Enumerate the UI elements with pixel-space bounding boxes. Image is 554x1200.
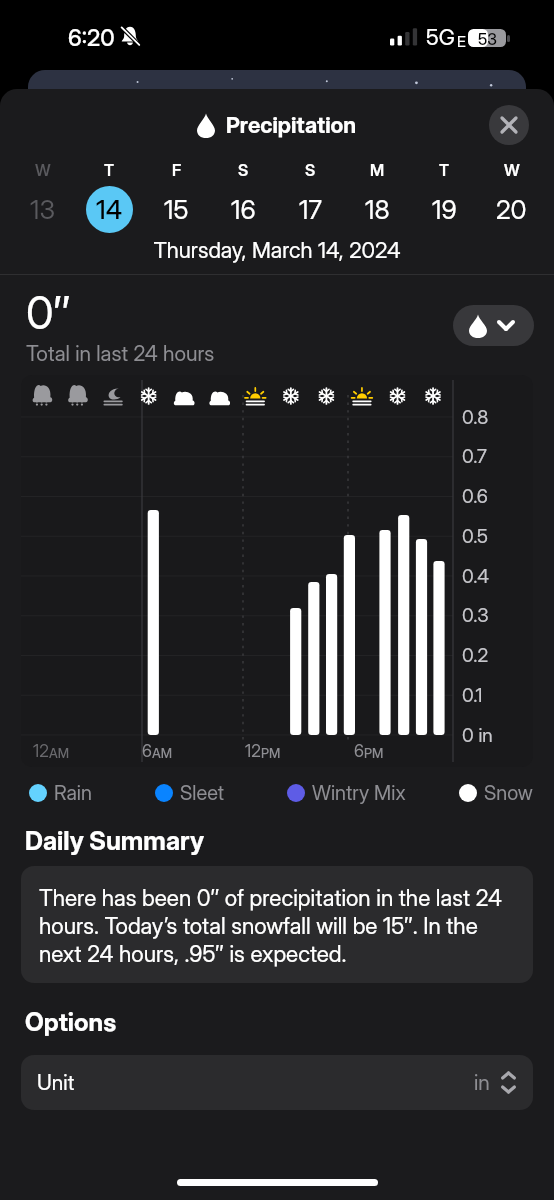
staticText: 6:20 [68, 24, 115, 52]
staticText: 0.8 [462, 406, 489, 429]
staticText: 0.6 [462, 485, 488, 508]
staticText: PM [261, 745, 281, 761]
staticText: Total in last 24 hours [26, 341, 215, 366]
staticText: Unit [37, 1070, 474, 1095]
button[interactable]: W [478, 160, 545, 233]
button[interactable]: Unit [21, 1055, 533, 1110]
staticText: 16 [231, 194, 256, 225]
button[interactable]: S [277, 160, 344, 233]
staticText: 0.3 [462, 604, 489, 627]
staticText: 0.2 [462, 644, 489, 667]
staticText: 0.7 [462, 445, 487, 468]
button[interactable]: W [9, 160, 76, 233]
button[interactable]: F [143, 160, 210, 233]
staticText: 18 [365, 194, 390, 225]
button[interactable]: Snow [459, 781, 533, 805]
staticText: 6 [142, 741, 152, 762]
staticText: 15 [164, 194, 189, 225]
staticText: W [504, 160, 520, 179]
staticText: AM [49, 745, 70, 761]
button[interactable]: Wintry Mix [287, 781, 406, 805]
button[interactable]: Close [489, 105, 529, 145]
staticText: 20 [496, 194, 527, 225]
staticText: 0 in [462, 724, 493, 747]
staticText: 13 [30, 194, 55, 225]
staticText: 6 [354, 741, 364, 762]
button[interactable]: M [344, 160, 411, 233]
button[interactable]: T [76, 160, 143, 233]
staticText: 5G [426, 24, 455, 51]
staticText: AM [152, 745, 173, 761]
staticText: M [370, 160, 385, 179]
staticText: Rain [54, 781, 92, 805]
staticText: Daily Summary [25, 825, 204, 856]
staticText: E [457, 32, 466, 50]
staticText: Thursday, March 14, 2024 [0, 237, 554, 264]
staticText: in [474, 1070, 490, 1095]
staticText: 12 [33, 741, 49, 762]
staticText: T [104, 160, 115, 179]
staticText: Wintry Mix [312, 781, 406, 805]
staticText: 53 [478, 29, 498, 47]
button[interactable]: Precipitation type menu [453, 305, 534, 346]
staticText: 19 [432, 194, 457, 225]
staticText: There has been 0″ of precipitation in th… [39, 884, 517, 967]
staticText: 0″ [26, 285, 71, 339]
staticText: W [35, 160, 51, 179]
staticText: Precipitation [226, 112, 357, 139]
staticText: S [238, 160, 249, 179]
staticText: Options [25, 1007, 117, 1037]
staticText: 17 [299, 194, 322, 225]
staticText: T [439, 160, 450, 179]
staticText: Snow [484, 781, 533, 805]
button[interactable]: Rain [29, 781, 92, 805]
button[interactable]: S [210, 160, 277, 233]
staticText: 14 [96, 194, 123, 225]
staticText: 0.4 [462, 565, 490, 588]
staticText: S [305, 160, 316, 179]
button[interactable]: T [411, 160, 478, 233]
button[interactable]: Sleet [155, 781, 225, 805]
staticText: 0.5 [462, 525, 489, 548]
staticText: PM [364, 745, 384, 761]
staticText: 12 [245, 741, 261, 762]
staticText: 0.1 [462, 684, 483, 707]
staticText: Sleet [180, 781, 225, 805]
staticText: F [172, 160, 182, 179]
